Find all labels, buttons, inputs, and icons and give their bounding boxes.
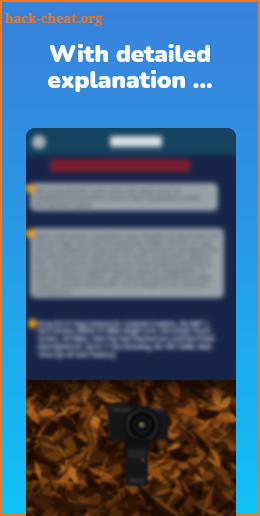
staticText: With detailed explanation ...	[2, 38, 258, 97]
staticText: Nemo enim ipsam voluptatem quia voluptas…	[34, 231, 220, 295]
staticText: Sony ZV-1F Vlog Camera for Content Creat…	[38, 319, 220, 359]
staticText: Sed ut perspiciatis unde omnis iste natu…	[34, 186, 214, 208]
staticText: hack-cheat.org	[5, 9, 103, 27]
